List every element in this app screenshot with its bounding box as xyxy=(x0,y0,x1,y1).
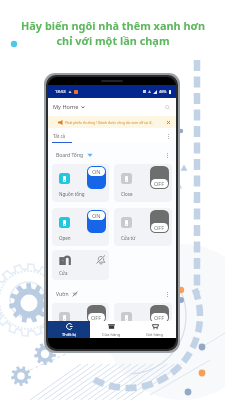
staticText: OFF xyxy=(154,180,165,187)
staticText: chỉ với một lần chạm xyxy=(56,33,170,48)
button[interactable]: Mute notifications xyxy=(52,250,109,280)
button[interactable]: Thiết bị xyxy=(48,321,90,338)
staticText: Close xyxy=(121,191,133,197)
button[interactable]: OFF xyxy=(114,303,172,321)
staticText: 18:53 xyxy=(55,89,66,95)
staticText: OFF xyxy=(154,314,165,321)
staticText: OFF xyxy=(154,224,165,231)
staticText: Vườn xyxy=(56,291,69,298)
button[interactable]: ON xyxy=(87,210,106,233)
button[interactable]: OFF xyxy=(114,164,172,202)
button[interactable]: OFF xyxy=(150,305,169,321)
button[interactable]: Search xyxy=(162,102,172,112)
button[interactable]: More options xyxy=(163,151,171,159)
button[interactable]: My Home xyxy=(53,103,85,111)
button[interactable]: ON xyxy=(87,166,106,189)
staticText: Cửa hàng xyxy=(102,332,121,337)
staticText: OFF xyxy=(91,314,102,321)
staticText: Nguồn tổng xyxy=(59,191,85,197)
staticText: Cửa từ xyxy=(121,235,136,241)
staticText: Phát phiếu thưởng ! Giành được công tắc … xyxy=(65,120,154,125)
staticText: My Home xyxy=(53,103,79,111)
staticText: Board Tổng xyxy=(56,152,84,159)
button[interactable]: More options xyxy=(164,132,172,140)
button[interactable]: OFF xyxy=(150,210,169,233)
button[interactable]: OFF xyxy=(114,208,172,246)
staticText: ON xyxy=(92,168,101,175)
staticText: ON xyxy=(92,212,101,219)
button[interactable]: Cửa hàng xyxy=(90,321,133,338)
button[interactable]: OFF xyxy=(52,303,109,321)
button[interactable]: Tất cả xyxy=(53,133,66,139)
button[interactable]: Close banner xyxy=(166,120,171,125)
button[interactable]: ON xyxy=(52,164,109,202)
staticText: Open xyxy=(59,235,71,241)
button[interactable]: OFF xyxy=(87,305,106,321)
staticText: 46% xyxy=(159,89,167,94)
button[interactable]: More options xyxy=(163,290,171,298)
button[interactable]: Giỏ hàng xyxy=(133,321,176,338)
staticText: Hãy biến ngôi nhà thêm xanh hơn xyxy=(21,18,205,33)
button[interactable]: OFF xyxy=(150,166,169,189)
button[interactable]: ON xyxy=(52,208,109,246)
button[interactable]: Phát phiếu thưởng ! Giành được công tắc … xyxy=(58,116,171,128)
staticText: Giỏ hàng xyxy=(146,332,164,337)
staticText: Thiết bị xyxy=(62,332,76,337)
staticText: Cửa xyxy=(59,270,68,276)
button[interactable]: Mute notifications xyxy=(96,255,106,265)
